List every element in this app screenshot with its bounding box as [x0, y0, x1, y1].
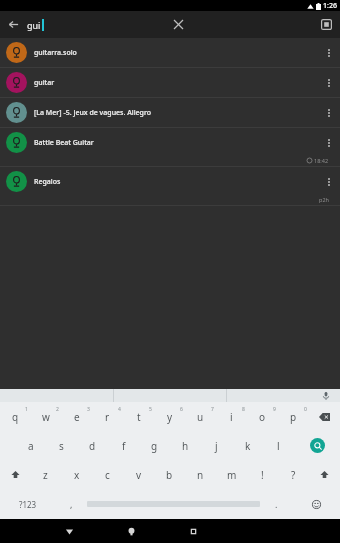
button[interactable]: u	[185, 402, 216, 431]
staticText: Battle Beat Guitar	[34, 138, 318, 148]
button[interactable]: ,	[55, 489, 87, 519]
staticText: gui	[27, 19, 41, 31]
staticText: m	[227, 468, 237, 482]
staticText: 6	[180, 406, 183, 413]
button[interactable]: guitar	[0, 68, 340, 98]
button[interactable]: Recent apps	[173, 519, 213, 543]
button[interactable]: w	[30, 402, 61, 431]
staticText: p	[290, 410, 297, 424]
button[interactable]: Backspace	[309, 402, 340, 431]
staticText: t	[137, 410, 141, 424]
staticText: Regalos	[34, 177, 318, 187]
staticText: y	[167, 410, 173, 424]
staticText: 9	[273, 406, 276, 413]
staticText: l	[277, 439, 280, 453]
staticText: n	[197, 468, 204, 482]
staticText: ?123	[19, 499, 37, 510]
staticText: e	[74, 410, 80, 424]
button[interactable]: Home	[111, 519, 151, 543]
staticText: d	[89, 439, 96, 453]
staticText: guitarra.solo	[34, 48, 318, 58]
staticText: 18:42	[314, 157, 329, 164]
staticText: z	[43, 468, 48, 482]
staticText: ,	[70, 498, 73, 510]
button[interactable]: k	[232, 431, 263, 460]
button[interactable]: .	[260, 489, 292, 519]
staticText: 8	[242, 406, 245, 413]
button[interactable]: Clear search	[165, 11, 192, 38]
button[interactable]: e	[61, 402, 92, 431]
button[interactable]: Voice input	[320, 390, 332, 402]
button[interactable]: Emoji	[292, 489, 340, 519]
button[interactable]: ?123	[0, 489, 55, 519]
button[interactable]: Space	[87, 500, 260, 508]
button[interactable]: Search	[294, 431, 340, 460]
staticText: .	[275, 498, 278, 510]
staticText: 1	[25, 406, 28, 413]
button[interactable]: ?	[278, 460, 309, 489]
staticText: q	[12, 410, 19, 424]
button[interactable]: More options	[318, 128, 340, 157]
staticText: 1:26	[323, 1, 337, 11]
button[interactable]: z	[30, 460, 61, 489]
button[interactable]: More options	[318, 98, 340, 127]
button[interactable]: v	[123, 460, 154, 489]
button[interactable]: g	[139, 431, 170, 460]
staticText: k	[245, 439, 251, 453]
button[interactable]: a	[15, 431, 46, 460]
button[interactable]: h	[170, 431, 201, 460]
button[interactable]: Shift	[0, 460, 30, 489]
staticText: p2h	[319, 196, 329, 203]
button[interactable]: r	[92, 402, 123, 431]
button[interactable]: j	[201, 431, 232, 460]
staticText: o	[259, 410, 266, 424]
button[interactable]: More options	[318, 38, 340, 67]
staticText: h	[182, 439, 189, 453]
staticText: s	[59, 439, 64, 453]
button[interactable]: i	[216, 402, 247, 431]
button[interactable]: [La Mer] -5. Jeux de vagues. Allegro	[0, 98, 340, 128]
staticText: !	[261, 468, 264, 482]
button[interactable]: o	[247, 402, 278, 431]
staticText: 5	[149, 406, 152, 413]
staticText: 2	[56, 406, 59, 413]
button[interactable]: t	[123, 402, 154, 431]
button[interactable]: q	[0, 402, 30, 431]
staticText: 3	[87, 406, 90, 413]
button[interactable]: d	[77, 431, 108, 460]
button[interactable]: Back	[0, 11, 27, 38]
staticText: v	[136, 468, 142, 482]
staticText: 4	[118, 406, 121, 413]
staticText: 7	[211, 406, 214, 413]
button[interactable]: s	[46, 431, 77, 460]
button[interactable]: Regalos	[0, 167, 340, 206]
staticText: a	[28, 439, 34, 453]
staticText: j	[215, 439, 218, 453]
staticText: guitar	[34, 78, 318, 88]
button[interactable]: More options	[318, 68, 340, 97]
button[interactable]: m	[216, 460, 247, 489]
staticText: c	[105, 468, 110, 482]
button[interactable]: l	[263, 431, 294, 460]
button[interactable]: Battle Beat Guitar	[0, 128, 340, 167]
button[interactable]: guitarra.solo	[0, 38, 340, 68]
button[interactable]: f	[108, 431, 139, 460]
button[interactable]: !	[247, 460, 278, 489]
button[interactable]: n	[185, 460, 216, 489]
button[interactable]: p	[278, 402, 309, 431]
staticText: ?	[291, 468, 296, 482]
button[interactable]: c	[92, 460, 123, 489]
button[interactable]: Back	[50, 519, 89, 543]
button[interactable]: y	[154, 402, 185, 431]
staticText: w	[42, 410, 50, 424]
staticText: b	[166, 468, 173, 482]
button[interactable]: Shift	[309, 460, 340, 489]
staticText: [La Mer] -5. Jeux de vagues. Allegro	[34, 108, 318, 118]
staticText: x	[74, 468, 80, 482]
button[interactable]: More options	[318, 167, 340, 196]
button[interactable]: x	[61, 460, 92, 489]
staticText: f	[122, 439, 126, 453]
button[interactable]: View options	[313, 11, 340, 38]
staticText: 0	[304, 406, 307, 413]
button[interactable]: b	[154, 460, 185, 489]
